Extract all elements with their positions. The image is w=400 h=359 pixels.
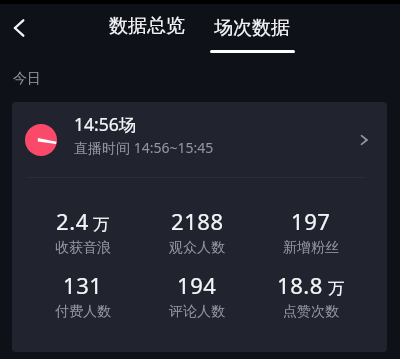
staticText: 数据总览 bbox=[109, 14, 185, 38]
staticText: 18.8 bbox=[277, 270, 324, 300]
staticText: 197 bbox=[291, 206, 331, 236]
staticText: 付费人数 bbox=[55, 303, 111, 321]
staticText: 万 bbox=[328, 278, 345, 299]
button[interactable]: 14:56场 bbox=[12, 102, 387, 177]
other: Details bbox=[355, 131, 373, 149]
staticText: 2188 bbox=[171, 206, 224, 236]
staticText: 观众人数 bbox=[169, 239, 225, 257]
staticText: 直播时间 14:56~15:45 bbox=[74, 138, 214, 157]
staticText: 新增粉丝 bbox=[283, 239, 339, 257]
staticText: 评论人数 bbox=[169, 303, 225, 321]
button[interactable]: Back bbox=[0, 8, 40, 48]
staticText: 131 bbox=[63, 270, 103, 300]
staticText: 今日 bbox=[13, 70, 41, 88]
staticText: 194 bbox=[177, 270, 217, 300]
button[interactable]: 场次数据 bbox=[203, 4, 301, 54]
staticText: 收获音浪 bbox=[55, 239, 111, 257]
staticText: 14:56场 bbox=[74, 112, 137, 136]
staticText: 2.4 bbox=[56, 206, 89, 236]
staticText: 万 bbox=[93, 214, 110, 235]
button[interactable]: 数据总览 bbox=[98, 4, 196, 48]
staticText: 场次数据 bbox=[214, 16, 290, 40]
staticText: 点赞次数 bbox=[283, 303, 339, 321]
